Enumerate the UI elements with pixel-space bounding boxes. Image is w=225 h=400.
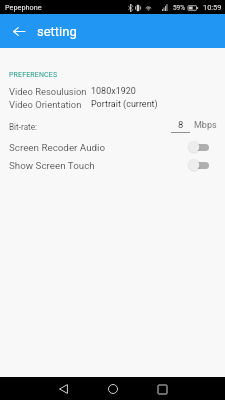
staticText: Bit-rate: — [9, 122, 38, 132]
button[interactable]: Video Orientation — [0, 99, 225, 112]
staticText: Mbps — [194, 120, 217, 131]
staticText: 59% — [173, 4, 185, 12]
staticText: Screen Recoder Audio — [9, 142, 106, 153]
staticText: Video Resoulusion — [9, 86, 87, 97]
button[interactable]: Recent apps — [151, 378, 173, 400]
button[interactable]: Show Screen Touch — [0, 156, 225, 174]
button[interactable]: Navigate up — [6, 18, 32, 44]
button[interactable]: Video Resoulusion — [0, 86, 225, 99]
staticText: PREFERENCES — [9, 71, 58, 79]
staticText: setting — [37, 24, 77, 39]
staticText: 10:59 — [203, 3, 222, 12]
button[interactable]: Back — [52, 378, 74, 400]
button[interactable]: Screen Recoder Audio — [0, 138, 225, 156]
staticText: 1080x1920 — [91, 86, 136, 97]
button[interactable]: Home — [102, 378, 124, 400]
button[interactable]: 8 — [171, 119, 190, 133]
staticText: Video Orientation — [9, 99, 82, 110]
button[interactable]: Bit-rate: — [0, 117, 225, 136]
staticText: Pepephone — [5, 3, 42, 12]
staticText: Show Screen Touch — [9, 160, 95, 171]
staticText: Portrait (current) — [91, 99, 158, 110]
staticText: 8 — [178, 119, 184, 130]
